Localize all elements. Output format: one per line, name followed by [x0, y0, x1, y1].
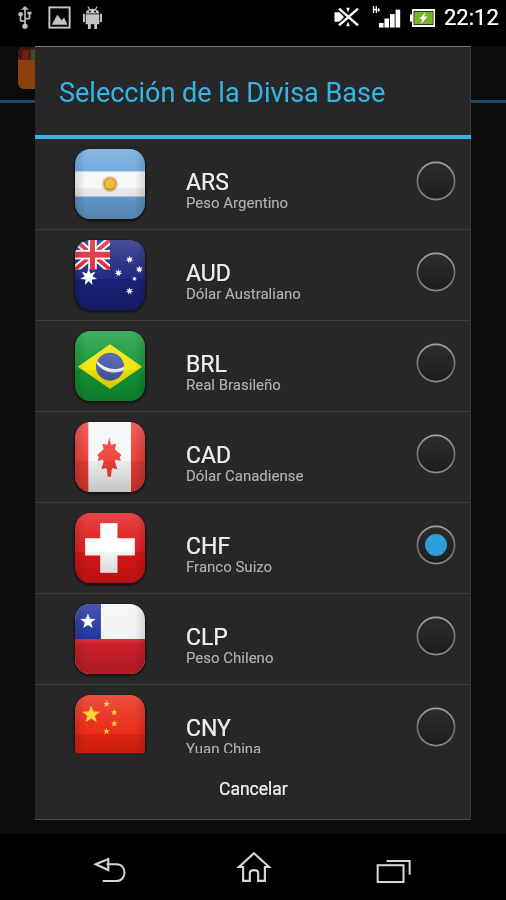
staticText: Cancelar [219, 779, 288, 800]
button[interactable]: Home [224, 846, 284, 888]
staticText: Peso Argentino [186, 194, 289, 212]
staticText: Dólar Australiano [186, 285, 301, 303]
staticText: Selección de la Divisa Base [59, 77, 386, 109]
staticText: Franco Suizo [186, 558, 273, 576]
staticText: Peso Chileno [186, 649, 274, 667]
button[interactable]: AUD [35, 230, 471, 320]
staticText: Yuan China [186, 740, 262, 753]
staticText: AUD [186, 260, 231, 287]
staticText: BRL [186, 351, 227, 378]
button[interactable]: CNY [35, 685, 471, 753]
staticText: Real Brasileño [186, 376, 281, 394]
staticText: CHF [186, 533, 231, 560]
staticText: Dólar Canadiense [186, 467, 304, 485]
button[interactable]: Recent apps [364, 850, 424, 892]
button[interactable]: CHF [35, 503, 471, 593]
button[interactable]: Cancelar [35, 753, 471, 820]
button[interactable]: CLP [35, 594, 471, 684]
button[interactable]: CAD [35, 412, 471, 502]
staticText: 22:12 [444, 5, 499, 31]
staticText: CLP [186, 624, 228, 651]
staticText: CAD [186, 442, 232, 469]
staticText: ARS [186, 169, 229, 196]
button[interactable]: ARS [35, 139, 471, 229]
button[interactable]: Back [82, 850, 142, 892]
button[interactable]: BRL [35, 321, 471, 411]
staticText: CNY [186, 715, 231, 742]
